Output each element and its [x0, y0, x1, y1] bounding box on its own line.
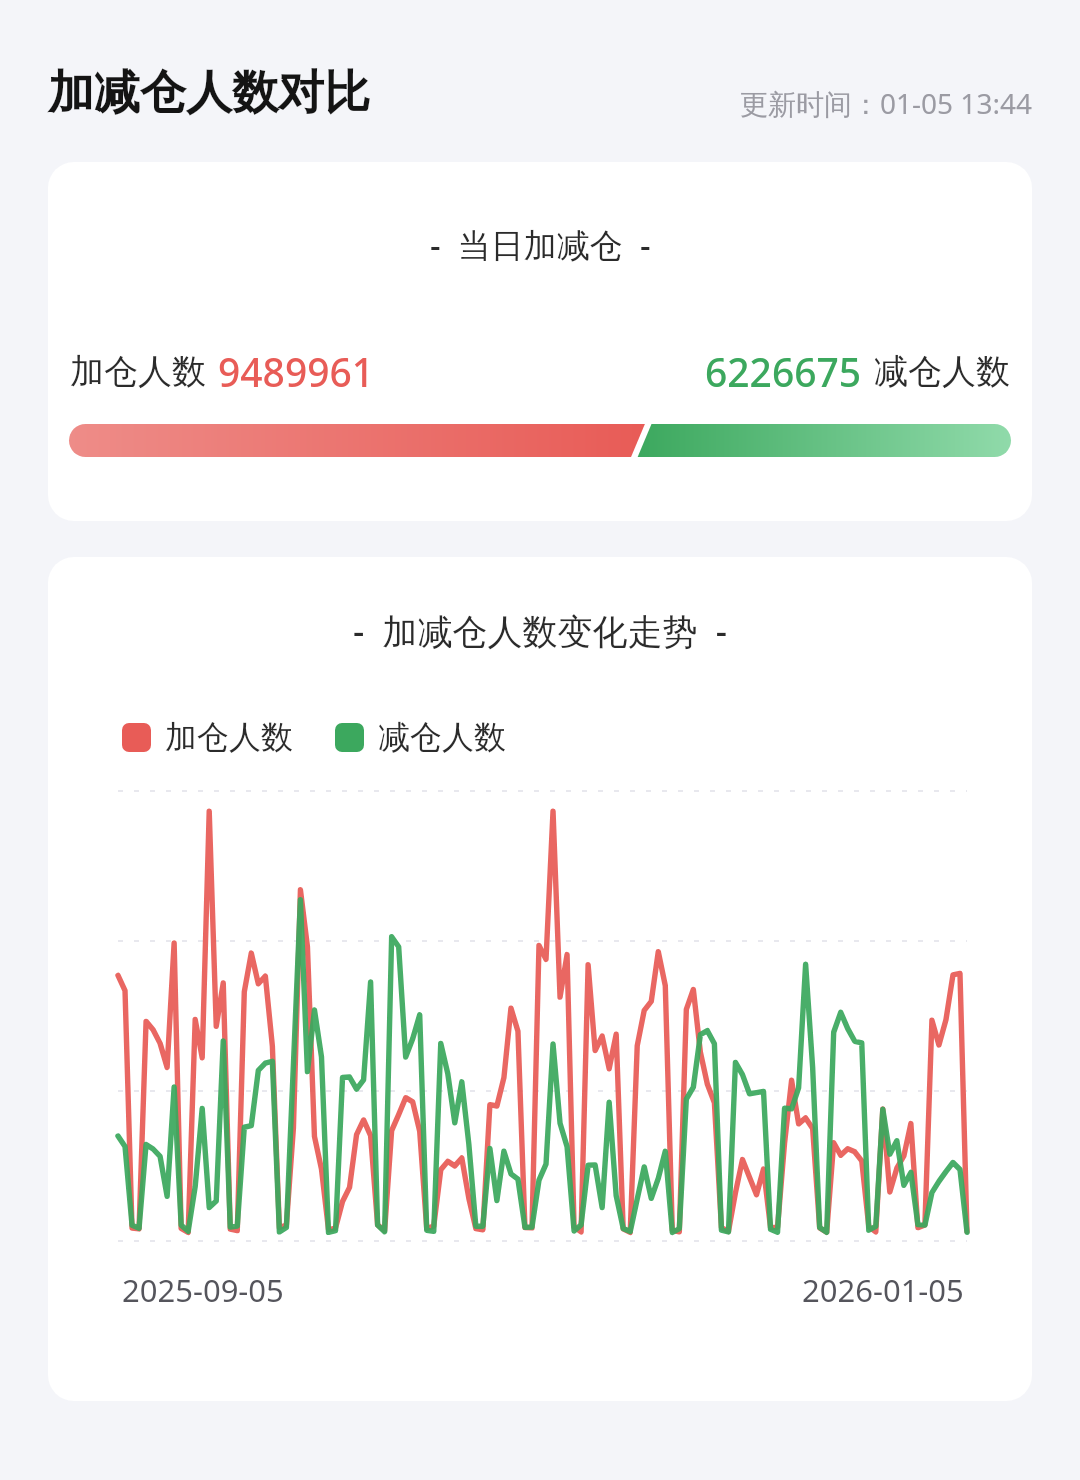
- staticText: 2026-01-05: [802, 1269, 964, 1311]
- staticText: 加仓人数: [165, 717, 293, 757]
- staticText: 2025-09-05: [122, 1269, 284, 1311]
- staticText: 加减仓人数对比: [48, 64, 370, 122]
- staticText: 9489961: [218, 345, 375, 398]
- staticText: - 加减仓人数变化走势 -: [353, 607, 727, 655]
- staticText: - 当日加减仓 -: [430, 222, 651, 267]
- staticText: 减仓人数: [874, 350, 1010, 393]
- staticText: 减仓人数: [378, 717, 506, 757]
- staticText: 加仓人数: [70, 350, 206, 393]
- staticText: 更新时间：01-05 13:44: [740, 84, 1032, 122]
- button[interactable]: - 当日加减仓 -: [48, 162, 1032, 521]
- button[interactable]: - 加减仓人数变化走势 -: [48, 557, 1032, 1401]
- staticText: 6226675: [705, 345, 862, 398]
